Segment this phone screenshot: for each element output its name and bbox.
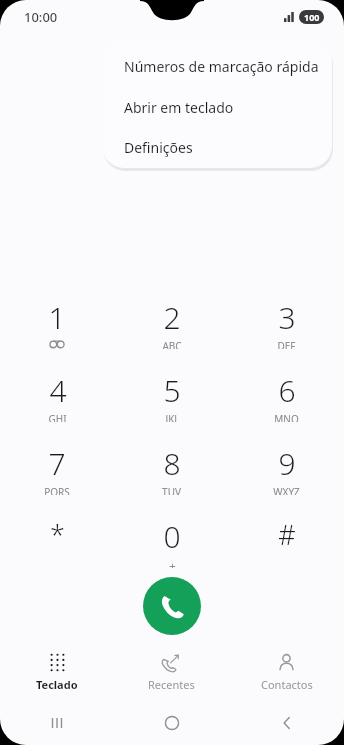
staticText: MNO xyxy=(274,412,299,422)
staticText: 7 xyxy=(48,443,66,484)
button[interactable]: Recent apps xyxy=(0,701,114,745)
staticText: ABC xyxy=(162,339,182,349)
button[interactable]: * xyxy=(0,516,114,568)
staticText: Teclado xyxy=(36,677,78,692)
button[interactable]: 0 xyxy=(114,516,229,568)
staticText: TUV xyxy=(162,485,181,495)
button[interactable]: Definições xyxy=(102,127,332,167)
button[interactable]: Back xyxy=(229,701,344,745)
button[interactable]: Call xyxy=(143,577,201,635)
button[interactable]: 9 xyxy=(229,443,344,495)
staticText: Definições xyxy=(124,138,193,157)
staticText: 10:00 xyxy=(24,8,58,26)
button[interactable]: 8 xyxy=(114,443,229,495)
button[interactable]: Teclado xyxy=(0,648,114,696)
staticText: JKL xyxy=(165,412,180,422)
button[interactable]: 7 xyxy=(0,443,114,495)
button[interactable]: 4 xyxy=(0,370,114,422)
staticText: 2 xyxy=(163,297,181,338)
staticText: 9 xyxy=(278,443,296,484)
staticText: GHI xyxy=(48,412,67,422)
staticText: 5 xyxy=(163,370,181,411)
staticText: WXYZ xyxy=(273,485,300,495)
staticText: 1 xyxy=(48,297,66,338)
staticText: DEF xyxy=(277,339,296,349)
button[interactable]: Contactos xyxy=(229,648,344,696)
staticText: Contactos xyxy=(261,677,313,692)
staticText: Recentes xyxy=(148,677,195,692)
button[interactable]: Números de marcação rápida xyxy=(102,40,332,87)
staticText: 6 xyxy=(278,370,296,411)
button[interactable]: 2 xyxy=(114,297,229,349)
staticText: PQRS xyxy=(44,485,70,495)
staticText: * xyxy=(50,516,65,553)
button[interactable]: 5 xyxy=(114,370,229,422)
staticText: 8 xyxy=(163,443,181,484)
button[interactable]: Abrir em teclado xyxy=(102,87,332,127)
button[interactable]: # xyxy=(229,516,344,568)
button[interactable]: 1 xyxy=(0,297,114,349)
button[interactable]: 3 xyxy=(229,297,344,349)
staticText: # xyxy=(278,516,296,553)
button[interactable]: Recentes xyxy=(114,648,229,696)
button[interactable]: 6 xyxy=(229,370,344,422)
button[interactable]: Home xyxy=(114,701,229,745)
staticText: 0 xyxy=(163,516,181,557)
staticText: 3 xyxy=(278,297,296,338)
staticText: Abrir em teclado xyxy=(124,98,234,117)
staticText: 100 xyxy=(304,11,320,23)
staticText: 4 xyxy=(49,370,67,411)
staticText: + xyxy=(169,558,176,568)
staticText: Números de marcação rápida xyxy=(124,57,319,76)
